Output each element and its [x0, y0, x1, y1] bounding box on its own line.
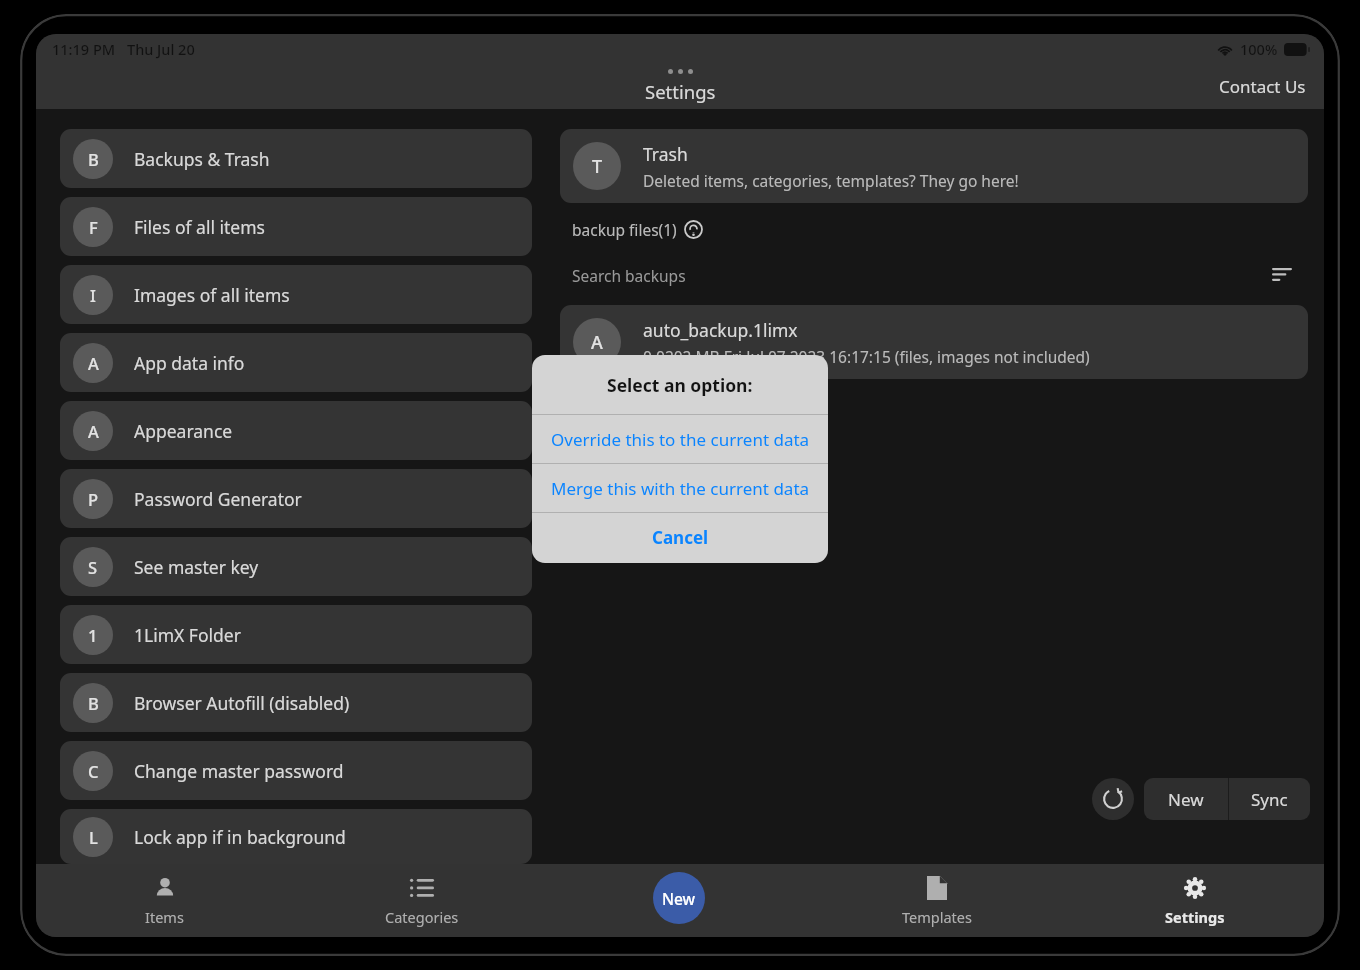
- staticText: Images of all items: [134, 283, 290, 307]
- staticText: New: [662, 888, 696, 909]
- staticText: L: [89, 826, 98, 848]
- button[interactable]: Search backups: [572, 265, 1268, 286]
- staticText: 11:19 PM: [52, 39, 116, 59]
- staticText: 0.0202 MB Fri Jul 07 2023 16:17:15 (file…: [643, 346, 1090, 367]
- staticText: P: [88, 488, 99, 510]
- staticText: Trash: [643, 142, 688, 166]
- button[interactable]: Cancel: [532, 513, 828, 561]
- button[interactable]: L: [60, 809, 532, 864]
- staticText: Templates: [902, 907, 972, 927]
- button[interactable]: A: [60, 401, 532, 460]
- button[interactable]: B: [60, 129, 532, 188]
- button[interactable]: Templates: [808, 864, 1066, 937]
- staticText: Search backups: [572, 265, 686, 286]
- button[interactable]: F: [60, 197, 532, 256]
- button[interactable]: Sort backups: [1268, 261, 1296, 289]
- staticText: Merge this with the current data: [551, 477, 810, 500]
- staticText: C: [88, 760, 99, 782]
- staticText: A: [88, 420, 99, 442]
- staticText: 1: [88, 624, 98, 646]
- staticText: S: [88, 556, 98, 578]
- staticText: A: [591, 330, 603, 355]
- button[interactable]: Items: [36, 864, 293, 937]
- staticText: Select an option:: [607, 373, 753, 397]
- staticText: B: [88, 148, 99, 170]
- button[interactable]: A: [560, 305, 1308, 379]
- staticText: 1LimX Folder: [134, 623, 241, 647]
- button[interactable]: 1: [60, 605, 532, 664]
- button[interactable]: Refresh: [1092, 778, 1134, 820]
- staticText: backup files(1): [572, 219, 677, 240]
- staticText: A: [88, 352, 99, 374]
- staticText: Browser Autofill (disabled): [134, 691, 350, 715]
- staticText: Settings: [1165, 907, 1225, 927]
- staticText: Override this to the current data: [551, 428, 810, 451]
- button[interactable]: A: [60, 333, 532, 392]
- button[interactable]: Contact Us: [1213, 69, 1312, 104]
- staticText: F: [89, 216, 98, 238]
- staticText: Appearance: [134, 419, 233, 443]
- staticText: See master key: [134, 555, 259, 579]
- button[interactable]: P: [60, 469, 532, 528]
- staticText: 100%: [1240, 39, 1278, 59]
- staticText: auto_backup.1limx: [643, 318, 798, 342]
- button[interactable]: Settings: [1066, 864, 1324, 937]
- button[interactable]: B: [60, 673, 532, 732]
- staticText: B: [88, 692, 99, 714]
- button[interactable]: Help about backup files: [684, 220, 703, 239]
- staticText: Change master password: [134, 759, 344, 783]
- button[interactable]: C: [60, 741, 532, 800]
- staticText: Thu Jul 20: [127, 39, 195, 59]
- button[interactable]: I: [60, 265, 532, 324]
- staticText: Settings: [645, 79, 716, 104]
- button[interactable]: T: [560, 129, 1308, 203]
- staticText: Backups & Trash: [134, 147, 270, 171]
- button[interactable]: New: [653, 872, 705, 924]
- button[interactable]: Sync: [1229, 778, 1310, 820]
- button[interactable]: Categories: [293, 864, 550, 937]
- staticText: New: [1168, 788, 1204, 811]
- button[interactable]: Override this to the current data: [532, 415, 828, 463]
- staticText: Lock app if in background: [134, 825, 346, 849]
- button[interactable]: Merge this with the current data: [532, 464, 828, 512]
- button[interactable]: S: [60, 537, 532, 596]
- staticText: T: [592, 154, 603, 179]
- staticText: Contact Us: [1219, 75, 1306, 98]
- staticText: Categories: [385, 907, 459, 927]
- staticText: Items: [145, 907, 184, 927]
- staticText: I: [90, 284, 96, 306]
- staticText: App data info: [134, 351, 245, 375]
- staticText: Deleted items, categories, templates? Th…: [643, 170, 1019, 191]
- staticText: Sync: [1251, 788, 1288, 811]
- staticText: Password Generator: [134, 487, 302, 511]
- staticText: Cancel: [652, 526, 709, 549]
- button[interactable]: New: [1144, 778, 1228, 820]
- staticText: Files of all items: [134, 215, 265, 239]
